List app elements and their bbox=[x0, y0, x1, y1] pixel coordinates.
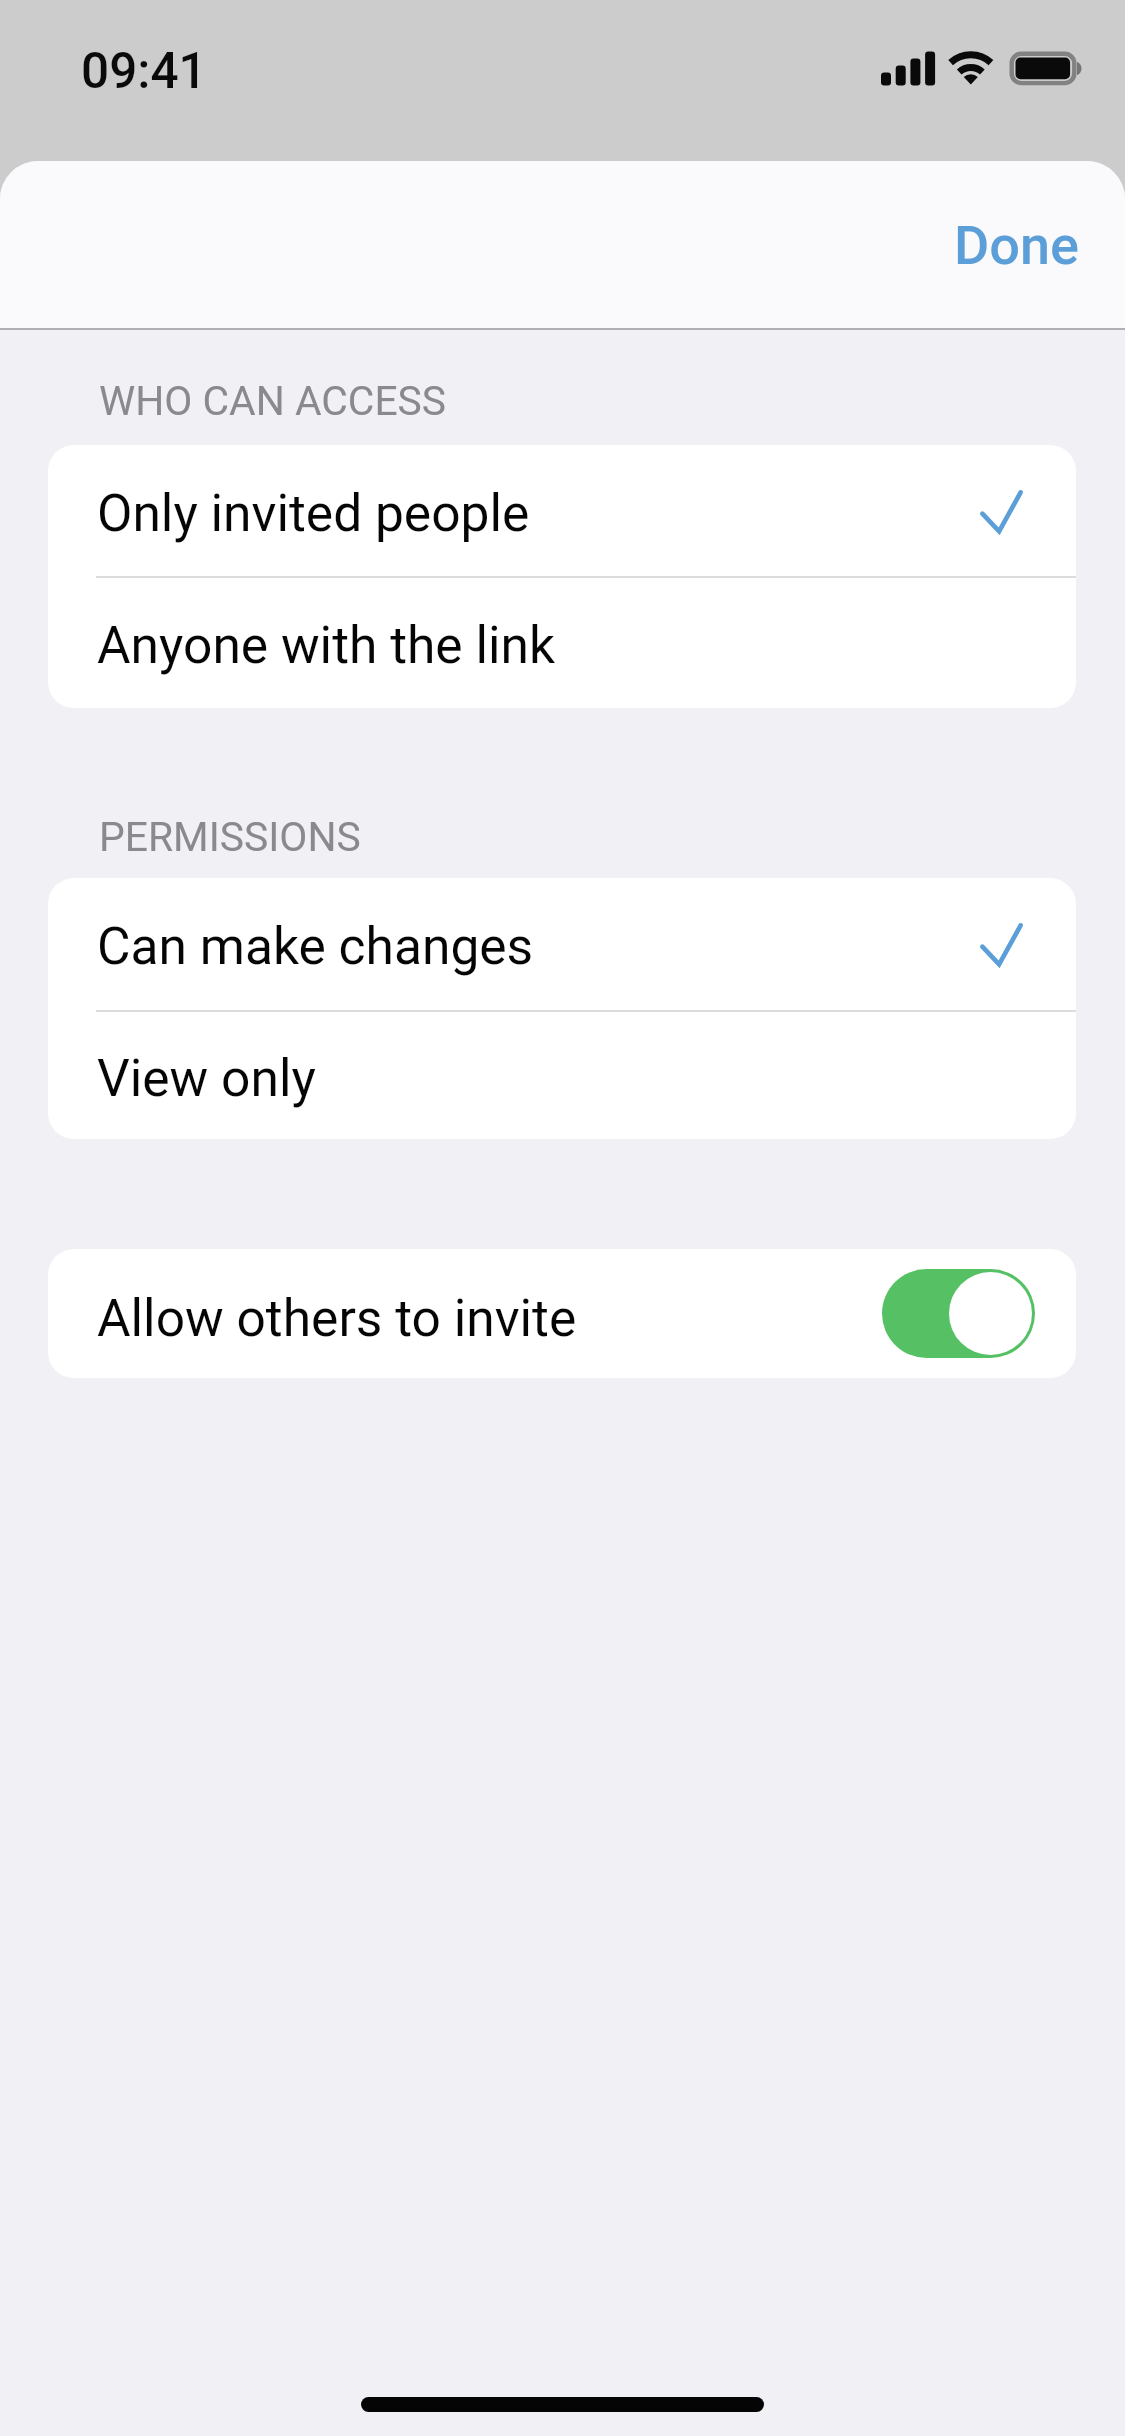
staticText: Done bbox=[954, 214, 1080, 277]
button[interactable]: Done bbox=[884, 161, 1125, 321]
button[interactable]: Only invited people bbox=[48, 445, 1076, 576]
staticText: PERMISSIONS bbox=[99, 813, 361, 861]
staticText: Only invited people bbox=[97, 483, 530, 543]
staticText: WHO CAN ACCESS bbox=[99, 377, 447, 425]
staticText: Anyone with the link bbox=[97, 615, 556, 675]
button[interactable]: Allow others to invite bbox=[48, 1249, 1076, 1378]
staticText: 09:41 bbox=[81, 42, 207, 100]
other: Cellular, Wi-Fi and battery status bbox=[878, 48, 1086, 88]
button[interactable]: Anyone with the link bbox=[48, 578, 1076, 708]
button[interactable]: View only bbox=[48, 1012, 1076, 1139]
staticText: Allow others to invite bbox=[97, 1288, 577, 1348]
button[interactable]: Allow others to invite, on bbox=[882, 1269, 1035, 1358]
button[interactable]: Can make changes bbox=[48, 878, 1076, 1010]
other: Selected bbox=[980, 490, 1023, 532]
other: Selected bbox=[980, 923, 1023, 965]
staticText: View only bbox=[97, 1048, 316, 1108]
staticText: Can make changes bbox=[97, 916, 534, 976]
